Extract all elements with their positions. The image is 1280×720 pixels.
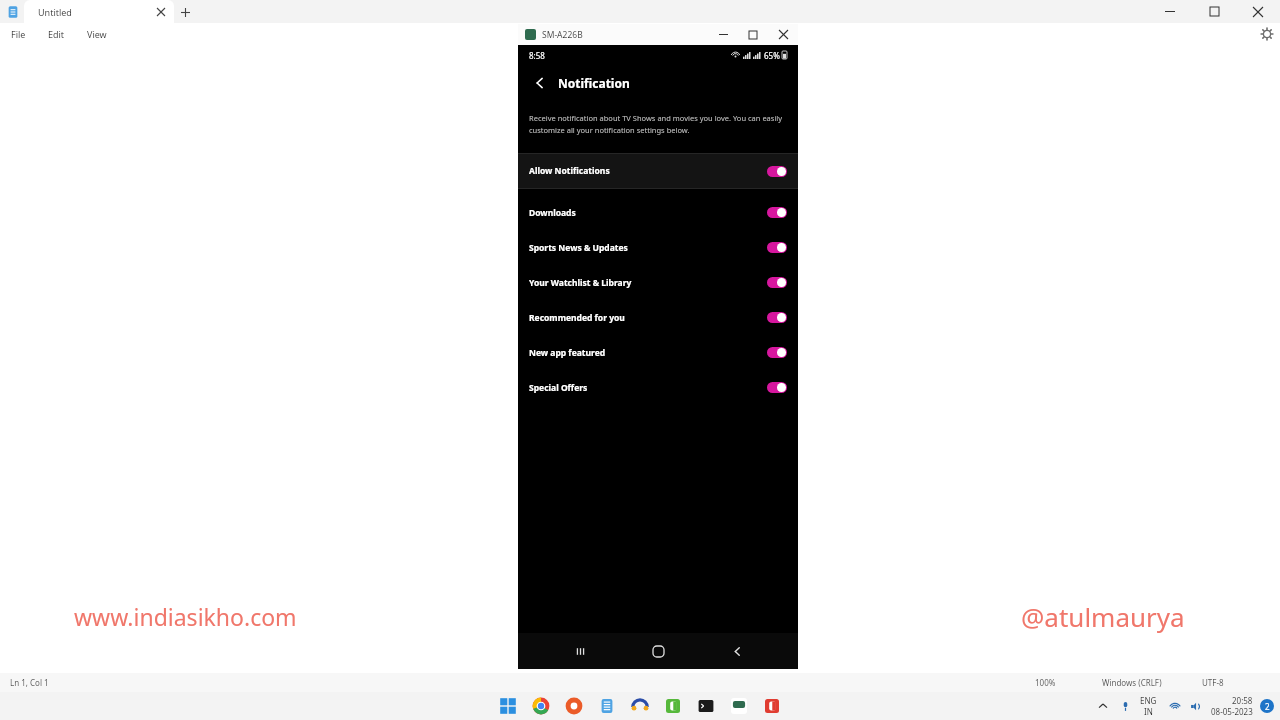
button[interactable]: Toggle [767, 312, 787, 323]
button[interactable]: 20:58 [1211, 695, 1253, 717]
staticText: ENG [1140, 695, 1157, 706]
staticText: New app featured [529, 347, 606, 359]
button[interactable]: Show hidden icons [1092, 695, 1114, 717]
button[interactable]: Toggle [767, 277, 787, 288]
staticText: Allow Notifications [529, 165, 610, 177]
staticText: UTF-8 [1202, 677, 1224, 688]
button[interactable]: Toggle [767, 207, 787, 218]
staticText: 100% [1035, 677, 1056, 688]
staticText: 65% [764, 50, 780, 61]
button[interactable]: Music [629, 695, 651, 717]
staticText: 8:58 [529, 50, 545, 61]
button[interactable]: Google Chrome [530, 695, 552, 717]
button[interactable]: Toggle [767, 166, 787, 177]
button[interactable]: Close [1236, 0, 1280, 23]
staticText: 08-05-2023 [1211, 706, 1253, 717]
staticText: Your Watchlist & Library [529, 277, 632, 289]
button[interactable]: Maximize emulator [738, 24, 768, 45]
button[interactable]: Back [527, 70, 553, 96]
button[interactable]: Toggle [767, 347, 787, 358]
staticText: @atulmaurya [1021, 599, 1185, 634]
staticText: IN [1144, 706, 1153, 717]
button[interactable]: View [76, 26, 118, 42]
staticText: 20:58 [1232, 695, 1253, 706]
button[interactable]: Notifications [1260, 699, 1274, 713]
button[interactable]: New app featured [518, 341, 798, 364]
button[interactable]: Close emulator [768, 24, 798, 45]
button[interactable]: Camtasia [662, 695, 684, 717]
button[interactable]: Network [1165, 696, 1185, 716]
staticText: Receive notification about TV Shows and … [529, 113, 787, 136]
button[interactable]: Camtasia Editor [761, 695, 783, 717]
button[interactable]: Sports News & Updates [518, 236, 798, 259]
staticText: Sports News & Updates [529, 242, 628, 254]
staticText: Untitled [38, 6, 72, 18]
button[interactable]: Recent apps [563, 634, 597, 668]
staticText: File [11, 28, 26, 40]
staticText: Downloads [529, 207, 576, 219]
staticText: Recommended for you [529, 312, 625, 324]
button[interactable]: Minimize emulator [708, 24, 738, 45]
button[interactable]: Your Watchlist & Library [518, 271, 798, 294]
button[interactable]: Volume [1185, 696, 1205, 716]
button[interactable]: Home [641, 634, 675, 668]
button[interactable]: New tab [174, 1, 196, 23]
button[interactable]: File [0, 26, 37, 42]
button[interactable]: Minimize [1148, 0, 1192, 23]
button[interactable]: Back [720, 634, 754, 668]
staticText: Ln 1, Col 1 [10, 677, 49, 688]
button[interactable]: Untitled [24, 0, 174, 23]
button[interactable]: Android Emulator [728, 695, 750, 717]
staticText: SM-A226B [542, 29, 583, 41]
button[interactable]: Terminal [695, 695, 717, 717]
button[interactable]: Edit [37, 26, 76, 42]
button[interactable]: Recommended for you [518, 306, 798, 329]
button[interactable]: Start [497, 695, 519, 717]
button[interactable]: Downloads [518, 201, 798, 224]
staticText: Windows (CRLF) [1102, 677, 1162, 688]
button[interactable]: Maximize [1192, 0, 1236, 23]
button[interactable]: Settings [1254, 23, 1280, 45]
staticText: www.indiasikho.com [74, 601, 297, 632]
staticText: 2 [1265, 701, 1270, 712]
button[interactable]: Toggle [767, 242, 787, 253]
button[interactable]: Close tab [152, 3, 170, 21]
staticText: Edit [48, 28, 65, 40]
staticText: Special Offers [529, 382, 588, 394]
staticText: Notification [558, 75, 630, 91]
button[interactable]: Microphone [1114, 695, 1136, 717]
button[interactable]: Brave [563, 695, 585, 717]
button[interactable]: Toggle [767, 382, 787, 393]
button[interactable]: Allow Notifications [518, 154, 798, 188]
staticText: View [87, 28, 107, 40]
button[interactable]: Notepad [596, 695, 618, 717]
button[interactable]: Special Offers [518, 376, 798, 399]
